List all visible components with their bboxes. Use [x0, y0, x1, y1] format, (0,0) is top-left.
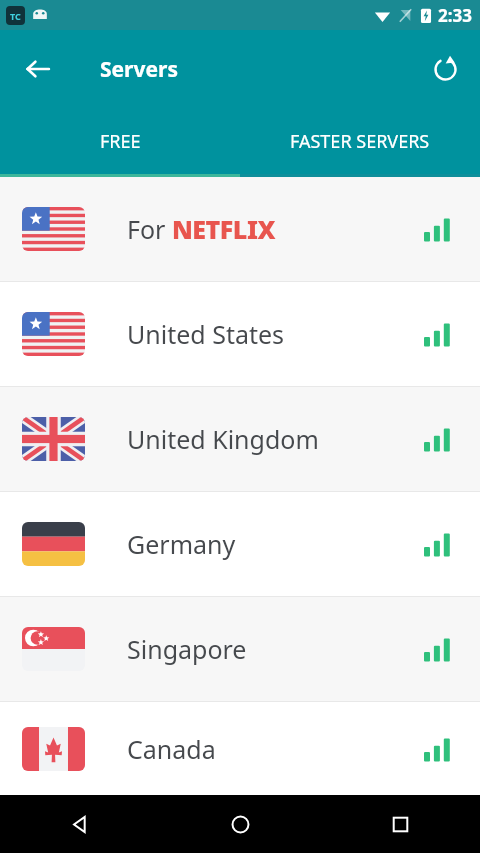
staticText: FREE [100, 129, 141, 154]
staticText: 2:33 [438, 4, 472, 27]
button[interactable]: Refresh [422, 46, 468, 92]
staticText: United Kingdom [127, 422, 319, 456]
button[interactable]: FASTER SERVERS [240, 108, 480, 174]
staticText: TC [10, 10, 21, 22]
button[interactable]: Recents [320, 795, 480, 853]
button[interactable]: Germany [0, 492, 480, 596]
button[interactable]: For [0, 177, 480, 281]
button[interactable]: Singapore [0, 597, 480, 701]
staticText: Servers [100, 55, 178, 84]
button[interactable]: Home [160, 795, 320, 853]
button[interactable]: United Kingdom [0, 387, 480, 491]
button[interactable]: United States [0, 282, 480, 386]
staticText: Singapore [127, 632, 247, 666]
staticText: NETFLIX [172, 212, 275, 246]
staticText: For [127, 212, 172, 246]
button[interactable]: Back [14, 45, 62, 93]
staticText: Canada [127, 732, 216, 766]
staticText: Germany [127, 527, 236, 561]
button[interactable]: Canada [0, 702, 480, 795]
staticText: United States [127, 317, 285, 351]
staticText: FASTER SERVERS [290, 129, 430, 154]
button[interactable]: FREE [0, 108, 240, 174]
button[interactable]: Back [0, 795, 160, 853]
